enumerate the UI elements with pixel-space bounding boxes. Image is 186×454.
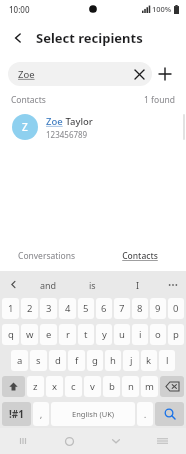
button[interactable]: Zoe [8,62,152,86]
staticText: 8 [137,302,143,315]
button[interactable]: j [123,350,139,371]
staticText: e [46,328,52,341]
staticText: f [75,354,79,367]
button[interactable]: d [49,350,66,371]
staticText: 0 [173,302,179,315]
button[interactable]: Navigate up [4,24,32,52]
button[interactable]: f [68,350,85,371]
button[interactable]: is [70,271,115,298]
staticText: z [33,380,38,393]
button[interactable]: y [96,324,112,345]
button[interactable]: 9 [150,298,166,319]
button[interactable]: n [122,376,139,397]
button[interactable]: Z [0,110,186,144]
button[interactable]: o [150,324,166,345]
staticText: I [136,279,140,291]
button[interactable]: Backspace [160,376,184,397]
button[interactable]: v [84,376,101,397]
button[interactable]: English (UK) [51,402,135,426]
button[interactable]: 6 [96,298,112,319]
button[interactable]: . [137,402,153,426]
staticText: d [55,354,61,367]
staticText: 1 found [144,94,175,106]
staticText: 1 [8,302,14,315]
staticText: Conversations [18,250,75,262]
staticText: Contacts [122,250,158,262]
button[interactable]: g [87,350,103,371]
button[interactable]: I [115,271,160,298]
staticText: Taylor [63,115,93,128]
button[interactable]: r [59,324,76,345]
staticText: c [71,380,76,393]
staticText: Zoe [18,68,128,81]
staticText: r [66,328,70,341]
button[interactable]: Change keyboard [139,428,186,454]
staticText: q [8,328,14,341]
staticText: is [89,279,96,291]
staticText: m [145,380,154,393]
button[interactable]: 7 [114,298,130,319]
button[interactable]: m [141,376,158,397]
staticText: Select recipients [36,29,143,47]
button[interactable]: 4 [59,298,76,319]
button[interactable]: , [33,402,49,426]
staticText: u [119,328,125,341]
button[interactable]: t [78,324,94,345]
button[interactable]: b [103,376,120,397]
staticText: 6 [101,302,107,315]
button[interactable]: h [105,350,121,371]
staticText: and [40,279,57,291]
button[interactable]: 5 [78,298,94,319]
button[interactable]: q [2,324,19,345]
staticText: 100% [152,4,172,14]
staticText: 4 [65,302,71,315]
button[interactable]: 1 [2,298,19,319]
button[interactable]: Shift [2,376,25,397]
staticText: . [144,409,147,420]
button[interactable]: w [21,324,38,345]
button[interactable]: Conversations [0,246,93,266]
button[interactable]: c [65,376,82,397]
button[interactable]: k [141,350,157,371]
staticText: y [102,328,107,341]
button[interactable]: z [27,376,44,397]
staticText: a [17,354,23,367]
staticText: o [155,328,161,341]
button[interactable]: l [159,350,175,371]
button[interactable]: Search [155,402,184,426]
button[interactable]: 8 [132,298,148,319]
button[interactable]: !#1 [2,402,31,426]
button[interactable]: i [132,324,148,345]
button[interactable]: Contacts [93,246,186,266]
staticText: 7 [119,302,125,315]
button[interactable]: 2 [21,298,38,319]
button[interactable]: Home [46,428,92,454]
staticText: n [128,380,134,393]
staticText: s [36,354,41,367]
staticText: l [166,354,169,367]
button[interactable]: 0 [168,298,184,319]
button[interactable]: s [30,350,47,371]
staticText: p [173,328,179,341]
staticText: Zoe [46,115,63,128]
button[interactable]: Clear search [128,63,150,85]
button[interactable]: u [114,324,130,345]
staticText: Contacts [11,94,46,106]
button[interactable]: Recent apps [0,428,46,454]
staticText: English (UK) [72,409,115,419]
button[interactable]: a [11,350,28,371]
staticText: !#1 [9,407,24,421]
staticText: Z [22,120,28,134]
button[interactable]: and [26,271,70,298]
button[interactable]: x [46,376,63,397]
button[interactable]: e [40,324,57,345]
staticText: 3 [46,302,52,315]
staticText: , [40,409,43,420]
staticText: j [130,354,133,367]
button[interactable]: p [168,324,184,345]
button[interactable]: Previous suggestions [0,271,26,298]
button[interactable]: More options [160,271,186,298]
button[interactable]: Add recipient [152,61,178,87]
button[interactable]: Hide keyboard [92,428,139,454]
button[interactable]: 3 [40,298,57,319]
